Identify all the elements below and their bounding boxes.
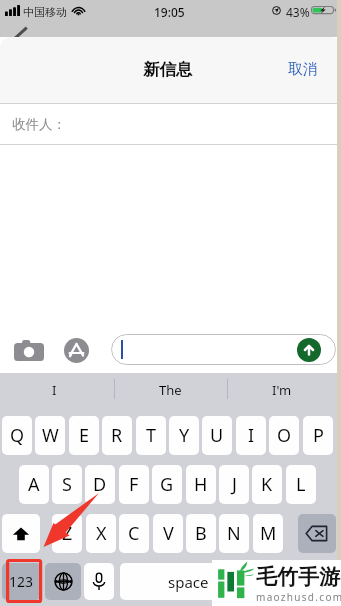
staticText: R (111, 423, 123, 448)
button[interactable]: A (19, 465, 49, 504)
staticText: 43% (286, 4, 310, 20)
staticText: I (248, 423, 255, 448)
button[interactable]: E (69, 416, 99, 455)
staticText: F (129, 472, 139, 497)
staticText: T (146, 423, 157, 448)
staticText: H (194, 472, 208, 497)
button[interactable]: R (102, 416, 132, 455)
staticText: W (42, 423, 59, 448)
button[interactable]: B (186, 514, 216, 553)
button[interactable]: G (152, 465, 182, 504)
staticText: D (93, 472, 107, 497)
button[interactable]: C (119, 514, 149, 553)
button[interactable]: T (136, 416, 166, 455)
staticText: P (313, 423, 324, 448)
staticText: I (52, 381, 57, 399)
staticText: L (296, 472, 306, 497)
staticText: return (276, 572, 321, 592)
staticText: U (210, 423, 224, 448)
button[interactable]: V (153, 514, 183, 553)
button[interactable]: P (303, 416, 333, 455)
button[interactable]: S (52, 465, 82, 504)
button[interactable]: Send (111, 334, 336, 365)
staticText: N (227, 521, 241, 546)
button[interactable]: Camera (12, 338, 46, 362)
staticText: 123 (9, 572, 34, 591)
staticText: E (79, 423, 90, 448)
button[interactable]: space (120, 563, 256, 600)
button[interactable]: 123 (2, 563, 41, 600)
button[interactable]: App Store (58, 338, 94, 362)
staticText: maozhusd.com (256, 590, 341, 604)
button[interactable]: F (119, 465, 149, 504)
staticText: 中国移动 (23, 5, 67, 19)
staticText: S (62, 472, 72, 497)
staticText: K (261, 472, 273, 497)
staticText: 毛竹手游 (256, 564, 340, 590)
staticText: 19:05 (154, 4, 185, 20)
button[interactable]: Y (169, 416, 199, 455)
button[interactable]: H (186, 465, 216, 504)
staticText: Q (10, 423, 25, 448)
button[interactable]: L (286, 465, 316, 504)
staticText: V (163, 521, 174, 546)
staticText: O (277, 423, 292, 448)
button[interactable]: K (252, 465, 282, 504)
staticText: B (195, 521, 207, 546)
button[interactable]: N (219, 514, 249, 553)
button[interactable]: J (219, 465, 249, 504)
staticText: 新信息 (143, 59, 193, 80)
button[interactable]: Shift (2, 514, 40, 553)
staticText: Y (179, 423, 190, 448)
button[interactable]: X (86, 514, 116, 553)
button[interactable]: W (35, 416, 65, 455)
button[interactable]: U (202, 416, 232, 455)
staticText: X (96, 521, 107, 546)
button[interactable]: Q (2, 416, 32, 455)
staticText: I'm (272, 381, 292, 399)
button[interactable]: D (85, 465, 115, 504)
staticText: G (160, 472, 174, 497)
button[interactable]: Dictate (84, 563, 114, 600)
staticText: 收件人： (12, 116, 66, 133)
staticText: M (260, 521, 277, 546)
staticText: The (159, 381, 182, 399)
staticText: C (128, 521, 140, 546)
button[interactable]: I (236, 416, 266, 455)
button[interactable]: M (253, 514, 283, 553)
staticText: A (28, 472, 40, 497)
button[interactable]: return (260, 563, 336, 600)
staticText: space (168, 572, 209, 592)
button[interactable]: 取消 (279, 51, 327, 88)
staticText: 取消 (288, 60, 318, 79)
staticText: Z (62, 521, 73, 546)
button[interactable]: Backspace (298, 514, 336, 553)
button[interactable]: Send (297, 338, 321, 362)
button[interactable]: O (269, 416, 299, 455)
button[interactable]: Change keyboard (45, 563, 81, 600)
button[interactable]: Z (52, 514, 82, 553)
staticText: J (232, 472, 237, 497)
